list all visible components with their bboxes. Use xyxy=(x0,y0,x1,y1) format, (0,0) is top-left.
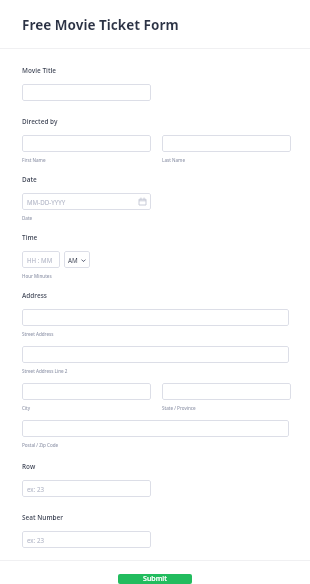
staticText: State / Province xyxy=(162,405,196,411)
staticText: Address xyxy=(22,291,47,300)
staticText: Row xyxy=(22,462,36,471)
staticText: Postal / Zip Code xyxy=(22,442,59,448)
staticText: First Name xyxy=(22,157,46,163)
staticText: City xyxy=(22,405,31,411)
staticText: Free Movie Ticket Form xyxy=(22,16,179,34)
staticText: ex: 23 xyxy=(27,536,44,544)
button[interactable]: Street Address Line 2 xyxy=(22,346,289,363)
staticText: Hour Minutes xyxy=(22,273,52,279)
button[interactable]: Row xyxy=(22,480,151,497)
button[interactable]: Seat Number xyxy=(22,531,151,548)
staticText: ex: 23 xyxy=(27,485,44,493)
staticText: HH : MM xyxy=(27,256,53,264)
button[interactable]: Last Name xyxy=(162,135,291,152)
button[interactable]: AM PM selector xyxy=(64,251,90,268)
staticText: AM xyxy=(68,256,78,264)
staticText: MM-DD-YYYY xyxy=(27,198,66,206)
staticText: Seat Number xyxy=(22,513,64,522)
staticText: Street Address Line 2 xyxy=(22,368,68,374)
staticText: Street Address xyxy=(22,331,54,337)
button[interactable]: Submit xyxy=(118,574,192,584)
button[interactable]: Movie Title xyxy=(22,84,151,101)
staticText: Last Name xyxy=(162,157,185,163)
staticText: Movie Title xyxy=(22,66,57,75)
button[interactable]: Date xyxy=(22,193,151,210)
button[interactable]: Address xyxy=(22,309,289,326)
button[interactable]: First Name xyxy=(22,135,151,152)
staticText: Submit xyxy=(143,574,167,584)
button[interactable]: Postal / Zip Code xyxy=(22,420,289,437)
staticText: Date xyxy=(22,215,33,221)
button[interactable]: State / Province xyxy=(162,383,291,400)
button[interactable]: Hour Minutes xyxy=(22,251,60,268)
button[interactable]: City xyxy=(22,383,151,400)
staticText: Directed by xyxy=(22,117,58,126)
staticText: Time xyxy=(22,233,38,242)
staticText: Date xyxy=(22,175,37,184)
